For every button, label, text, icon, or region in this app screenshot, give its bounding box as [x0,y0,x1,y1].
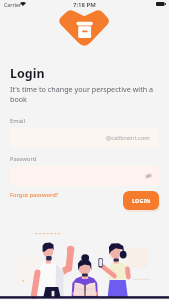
button[interactable]: Show password [10,166,159,186]
staticText: Email [10,117,25,125]
staticText: Carrier [4,1,22,8]
staticText: @calibraint.com [106,134,150,142]
staticText: Password [10,155,37,163]
staticText: 7:18 PM [73,1,96,9]
staticText: Login [10,65,45,82]
staticText: LOGIN [132,197,151,204]
button[interactable]: @calibraint.com [10,128,159,148]
staticText: It's time to change your perspective wit… [10,84,158,104]
button[interactable]: Show password [145,173,152,179]
button[interactable]: LOGIN [123,191,159,210]
staticText: Forgot password? [10,191,59,199]
button[interactable]: Forgot password? [10,191,59,199]
